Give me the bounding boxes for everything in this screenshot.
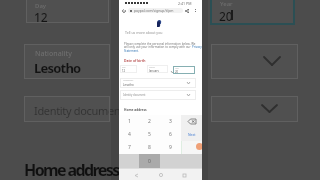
staticText: 2:41 PM xyxy=(178,1,192,6)
button[interactable] xyxy=(211,96,298,122)
staticText: Day xyxy=(122,66,126,69)
staticText: Please complete the personal information… xyxy=(124,42,196,46)
staticText: 9 xyxy=(169,144,172,151)
button[interactable]: Next xyxy=(181,128,202,141)
staticText: Month xyxy=(149,66,155,69)
button[interactable]: 1 xyxy=(119,115,139,128)
staticText: January xyxy=(149,69,159,73)
button[interactable]: 3 xyxy=(160,115,181,128)
button[interactable]: 4 xyxy=(119,128,139,141)
staticText: 4 xyxy=(128,131,131,138)
staticText: will only use your information to comply… xyxy=(124,45,192,49)
staticText: 0 xyxy=(148,158,151,165)
button[interactable]: Reload xyxy=(122,9,126,13)
staticText: 6 xyxy=(169,131,172,138)
button[interactable]: Day xyxy=(26,0,109,23)
button[interactable] xyxy=(211,44,298,79)
button[interactable]: 6 xyxy=(160,128,181,141)
button[interactable]: Home xyxy=(157,171,165,179)
staticText: Year xyxy=(220,0,233,8)
staticText: Tell us more about you xyxy=(125,30,163,35)
button[interactable]: paypal.com/signup/t/pm xyxy=(128,8,183,13)
staticText: 5 xyxy=(148,131,151,138)
button[interactable]: 5 xyxy=(139,128,160,141)
button[interactable]: More options xyxy=(193,9,197,13)
staticText: 20 xyxy=(175,70,179,74)
staticText: Year xyxy=(175,67,179,70)
staticText: Identity document xyxy=(123,93,146,97)
staticText: 3 xyxy=(169,118,172,125)
staticText: Home address xyxy=(24,159,119,180)
button[interactable]: Year xyxy=(173,66,195,74)
button[interactable]: Nationality xyxy=(24,44,110,79)
staticText: paypal.com/signup/t/pm xyxy=(134,8,174,13)
button[interactable]: Identity document xyxy=(120,90,196,100)
button[interactable]: 7 xyxy=(119,141,139,154)
staticText: Nationality xyxy=(35,49,72,59)
staticText: Statement. xyxy=(124,49,139,53)
button[interactable]: Month xyxy=(147,65,168,73)
staticText: 2 xyxy=(148,118,151,125)
staticText: Date of birth xyxy=(124,58,146,63)
staticText: Nationality xyxy=(123,79,134,82)
staticText: Day xyxy=(35,2,46,10)
button[interactable]: Back xyxy=(132,171,140,179)
staticText: Identity document xyxy=(34,103,120,118)
staticText: 12 xyxy=(34,9,48,25)
staticText: Next xyxy=(188,132,196,137)
button[interactable]: Zero xyxy=(139,154,160,168)
button[interactable]: Recents xyxy=(180,171,188,179)
button[interactable]: 8 xyxy=(139,141,160,154)
button[interactable]: Identity document xyxy=(24,96,110,122)
button[interactable]: Backspace xyxy=(181,115,202,128)
staticText: 1 xyxy=(128,118,131,125)
staticText: Privacy xyxy=(192,45,202,49)
staticText: 8 xyxy=(148,144,151,151)
staticText: Lesotho xyxy=(34,59,81,77)
button[interactable]: Year xyxy=(210,0,295,25)
staticText: Home address xyxy=(124,108,147,112)
button[interactable]: Nationality xyxy=(120,78,196,88)
staticText: 20 xyxy=(219,8,233,24)
button[interactable]: 2 xyxy=(139,115,160,128)
staticText: Lesotho xyxy=(123,83,134,87)
button[interactable]: Emoji xyxy=(181,141,202,154)
button[interactable]: Day xyxy=(120,65,137,73)
staticText: 12 xyxy=(122,69,126,73)
button[interactable]: 9 xyxy=(160,141,181,154)
staticText: 7 xyxy=(128,144,131,151)
button[interactable]: Share xyxy=(185,9,189,13)
